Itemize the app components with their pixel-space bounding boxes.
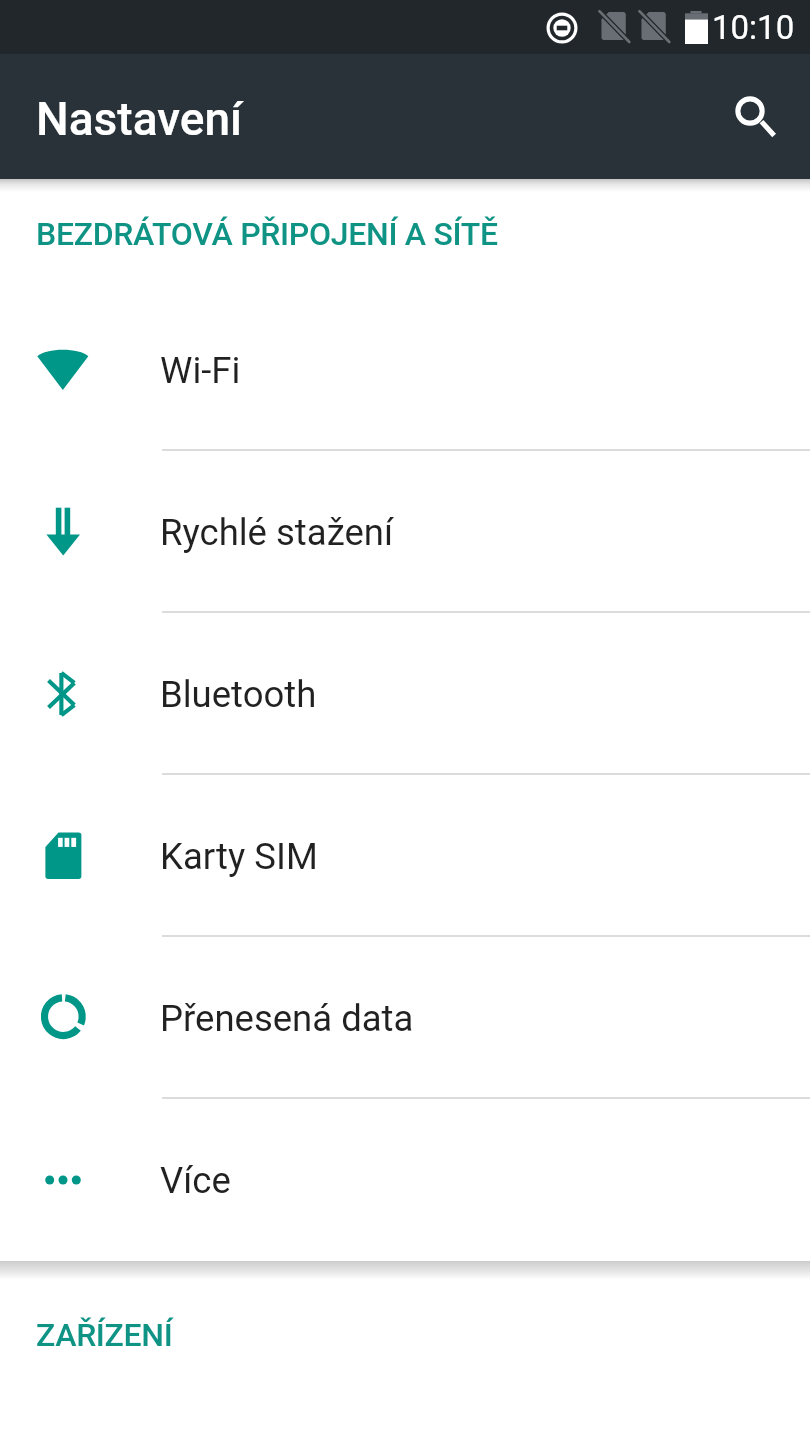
staticText: Wi-Fi	[160, 349, 241, 392]
button[interactable]: Bluetooth	[0, 613, 810, 775]
button[interactable]: Wi-Fi	[0, 289, 810, 451]
button[interactable]: Karty SIM	[0, 775, 810, 937]
button[interactable]: Rychlé stažení	[0, 451, 810, 613]
staticText: Rychlé stažení	[160, 511, 394, 554]
staticText: Bluetooth	[160, 673, 317, 716]
staticText: Více	[160, 1159, 231, 1202]
button[interactable]: Přenesená data	[0, 937, 810, 1099]
button[interactable]: Search	[715, 75, 797, 157]
staticText: Karty SIM	[160, 835, 318, 878]
staticText: Nastavení	[36, 92, 243, 146]
staticText: BEZDRÁTOVÁ PŘIPOJENÍ A SÍTĚ	[36, 215, 498, 253]
button[interactable]: Více	[0, 1099, 810, 1261]
staticText: Přenesená data	[160, 997, 414, 1040]
staticText: 10:10	[712, 8, 795, 47]
staticText: ZAŘÍZENÍ	[36, 1316, 173, 1354]
